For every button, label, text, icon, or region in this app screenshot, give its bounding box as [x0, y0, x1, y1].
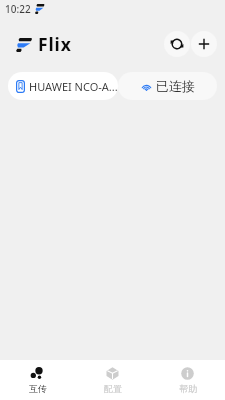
staticText: 配置 [104, 383, 122, 394]
staticText: 互传 [29, 383, 47, 394]
button[interactable]: Refresh [164, 31, 190, 57]
staticText: HUAWEI NCO-A... [29, 79, 118, 94]
button[interactable]: Add [191, 31, 217, 57]
staticText: 10:22 [5, 2, 31, 16]
staticText: Flix [38, 32, 72, 56]
button[interactable]: 帮助 [150, 366, 225, 394]
button[interactable]: HUAWEI NCO-A... [8, 72, 118, 100]
staticText: 已连接 [156, 78, 195, 94]
button[interactable]: 已连接 [118, 72, 217, 100]
button[interactable]: 互传 [0, 366, 75, 394]
button[interactable]: 配置 [75, 366, 150, 394]
staticText: 帮助 [179, 383, 197, 394]
